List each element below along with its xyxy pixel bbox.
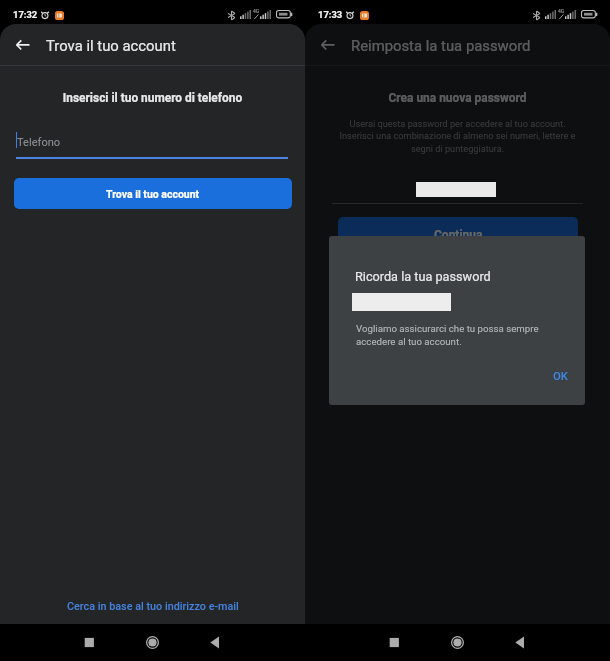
staticText: Vogliamo assicurarci che tu possa sempre…	[356, 323, 546, 348]
staticText: Telefono	[17, 136, 61, 149]
staticText: Ricorda la tua password	[355, 269, 491, 284]
button[interactable]: Back	[10, 33, 34, 57]
staticText: OK	[553, 370, 568, 383]
button[interactable]: Trova il tuo account	[14, 178, 292, 209]
staticText: Cerca in base al tuo indirizzo e-mail	[67, 600, 239, 613]
staticText: Continua	[434, 228, 483, 242]
staticText: Trova il tuo account	[46, 37, 176, 54]
button[interactable]: OK	[548, 365, 573, 388]
staticText: Reimposta la tua password	[351, 37, 531, 54]
staticText: Inserisci il tuo numero di telefono	[0, 91, 305, 105]
staticText: 4G	[253, 8, 260, 14]
staticText: Trova il tuo account	[106, 188, 200, 200]
staticText: 17:33	[318, 9, 343, 20]
staticText: Userai questa password per accedere al t…	[334, 118, 581, 154]
button[interactable]: Cerca in base al tuo indirizzo e-mail	[0, 600, 305, 613]
button[interactable]: Back	[315, 33, 339, 57]
staticText: 4G	[558, 8, 565, 14]
button[interactable]: Continua	[338, 217, 578, 252]
staticText: 17:32	[13, 9, 38, 20]
staticText: Crea una nuova password	[305, 91, 610, 105]
